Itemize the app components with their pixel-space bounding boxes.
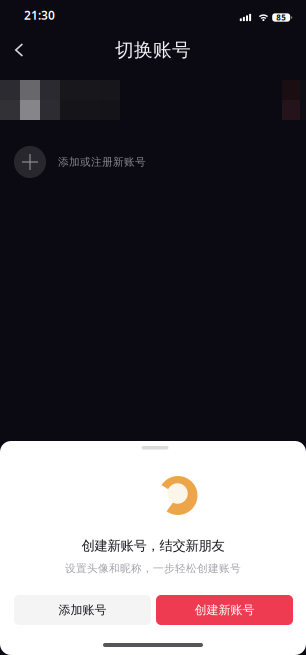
staticText: 切换账号 xyxy=(115,38,191,61)
staticText: 创建新账号 xyxy=(194,603,254,617)
button[interactable]: 添加或注册新账号 xyxy=(0,141,306,183)
staticText: 添加或注册新账号 xyxy=(58,155,146,168)
button[interactable] xyxy=(0,76,306,124)
staticText: 21:30 xyxy=(24,7,55,23)
button[interactable]: Back xyxy=(4,35,34,65)
staticText: 85 xyxy=(276,12,286,23)
button[interactable]: 创建新账号 xyxy=(156,595,293,625)
staticText: 创建新账号，结交新朋友 xyxy=(81,537,224,554)
staticText: 设置头像和昵称，一步轻松创建账号 xyxy=(65,562,241,575)
staticText: 添加账号 xyxy=(58,603,106,617)
button[interactable]: 添加账号 xyxy=(14,595,151,625)
